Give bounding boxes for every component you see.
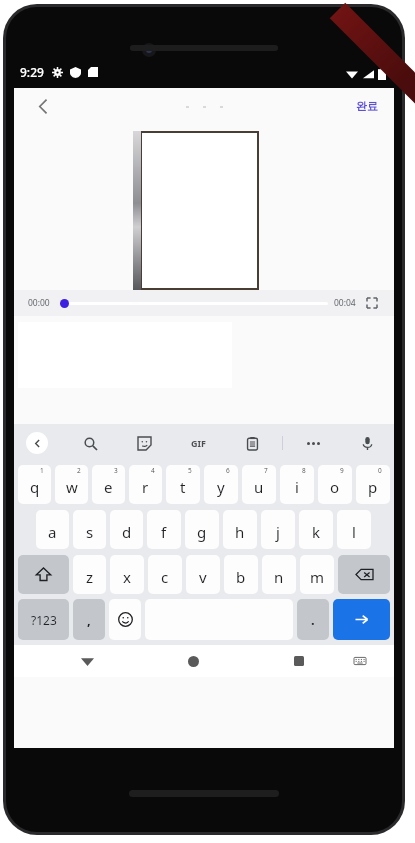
button[interactable]: o bbox=[318, 465, 352, 504]
staticText: 4 bbox=[151, 466, 155, 475]
staticText: a bbox=[48, 522, 57, 542]
button[interactable]: Enter bbox=[333, 599, 390, 640]
button[interactable]: h bbox=[223, 510, 257, 549]
staticText: y bbox=[217, 477, 225, 497]
staticText: o bbox=[330, 477, 340, 497]
button[interactable]: Emoji bbox=[109, 599, 141, 640]
staticText: j bbox=[276, 522, 280, 542]
staticText: 7 bbox=[264, 466, 268, 475]
button[interactable]: g bbox=[185, 510, 219, 549]
staticText: GIF bbox=[191, 437, 206, 449]
button[interactable]: , bbox=[73, 599, 105, 640]
button[interactable]: u bbox=[242, 465, 276, 504]
button[interactable]: n bbox=[262, 555, 296, 594]
button[interactable]: d bbox=[110, 510, 143, 549]
button[interactable]: Recent apps bbox=[284, 646, 314, 676]
staticText: x bbox=[123, 567, 131, 587]
button[interactable]: f bbox=[147, 510, 181, 549]
button[interactable]: Home bbox=[178, 646, 208, 676]
button[interactable] bbox=[60, 296, 324, 310]
button[interactable]: q bbox=[18, 465, 51, 504]
staticText: p bbox=[368, 477, 378, 497]
button[interactable]: 완료 bbox=[350, 95, 384, 117]
staticText: 00:04 bbox=[334, 297, 356, 309]
staticText: 00:00 bbox=[28, 297, 50, 309]
staticText: g bbox=[197, 522, 207, 542]
staticText: r bbox=[142, 477, 149, 497]
button[interactable]: w bbox=[55, 465, 88, 504]
staticText: 5 bbox=[188, 466, 192, 475]
staticText: 2 bbox=[77, 466, 81, 475]
button[interactable]: p bbox=[356, 465, 390, 504]
button[interactable]: Clipboard bbox=[239, 430, 265, 456]
staticText: i bbox=[295, 477, 299, 497]
staticText: f bbox=[161, 522, 167, 542]
button[interactable]: Voice input bbox=[354, 430, 380, 456]
staticText: q bbox=[30, 477, 40, 497]
button[interactable]: . bbox=[297, 599, 329, 640]
staticText: w bbox=[66, 477, 78, 497]
button[interactable]: Back bbox=[26, 89, 60, 123]
staticText: . bbox=[311, 611, 315, 629]
staticText: s bbox=[86, 522, 94, 542]
staticText: , bbox=[87, 611, 91, 629]
button[interactable]: y bbox=[204, 465, 238, 504]
staticText: k bbox=[312, 522, 321, 542]
button[interactable]: j bbox=[261, 510, 295, 549]
button[interactable]: Back bbox=[72, 646, 102, 676]
button[interactable]: v bbox=[186, 555, 220, 594]
staticText: n bbox=[274, 567, 284, 587]
staticText: 6 bbox=[226, 466, 230, 475]
button[interactable]: e bbox=[92, 465, 125, 504]
staticText: u bbox=[254, 477, 264, 497]
staticText: 1 bbox=[40, 466, 44, 475]
button[interactable]: Backspace bbox=[338, 555, 390, 594]
button[interactable]: Search bbox=[77, 430, 103, 456]
button[interactable]: Switch keyboard bbox=[345, 646, 375, 676]
button[interactable]: ?123 bbox=[18, 599, 69, 640]
button[interactable]: More options bbox=[300, 430, 326, 456]
button[interactable]: Expand bbox=[26, 432, 48, 454]
staticText: ?123 bbox=[31, 612, 57, 628]
button[interactable]: x bbox=[110, 555, 144, 594]
staticText: m bbox=[310, 567, 325, 587]
staticText: h bbox=[235, 522, 245, 542]
button[interactable]: k bbox=[299, 510, 333, 549]
staticText: d bbox=[122, 522, 132, 542]
button[interactable]: a bbox=[36, 510, 69, 549]
button[interactable]: b bbox=[224, 555, 258, 594]
staticText: b bbox=[236, 567, 246, 587]
button[interactable]: l bbox=[337, 510, 371, 549]
button[interactable]: Shift bbox=[18, 555, 69, 594]
button[interactable]: Fullscreen bbox=[364, 295, 380, 311]
staticText: l bbox=[352, 522, 356, 542]
staticText: z bbox=[86, 567, 94, 587]
button[interactable]: GIF bbox=[185, 430, 211, 456]
staticText: c bbox=[161, 567, 169, 587]
button[interactable]: s bbox=[73, 510, 106, 549]
staticText: 9 bbox=[340, 466, 344, 475]
staticText: 완료 bbox=[356, 99, 378, 113]
staticText: 3 bbox=[114, 466, 118, 475]
staticText: t bbox=[180, 477, 186, 497]
button[interactable]: Stickers bbox=[131, 430, 157, 456]
staticText: v bbox=[199, 567, 207, 587]
button[interactable]: i bbox=[280, 465, 314, 504]
button[interactable]: r bbox=[129, 465, 162, 504]
staticText: 9:29 bbox=[20, 64, 44, 80]
button[interactable]: t bbox=[166, 465, 200, 504]
button[interactable]: z bbox=[73, 555, 106, 594]
staticText: 8 bbox=[302, 466, 306, 475]
staticText: e bbox=[104, 477, 113, 497]
button[interactable]: c bbox=[148, 555, 182, 594]
button[interactable]: m bbox=[300, 555, 334, 594]
staticText: 0 bbox=[378, 466, 382, 475]
